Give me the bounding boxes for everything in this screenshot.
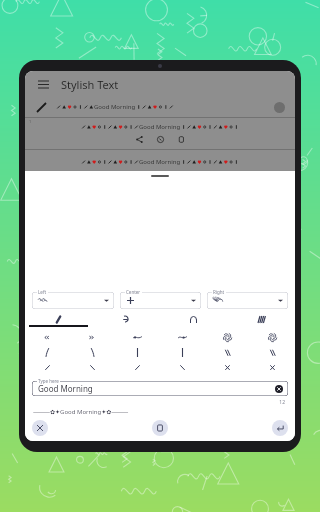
staticText: 12	[25, 399, 285, 406]
button[interactable]	[32, 292, 114, 309]
staticText: Left	[38, 289, 47, 295]
button[interactable]: Symbol 6	[250, 330, 295, 345]
staticText: Right	[213, 289, 225, 295]
button[interactable]: Enter	[272, 420, 288, 436]
button[interactable]: More	[274, 102, 285, 113]
button[interactable]: Symbol 14	[70, 360, 115, 375]
staticText: Good Morning	[139, 123, 181, 131]
button[interactable]: Symbol 5	[205, 330, 250, 345]
button[interactable]: Symbol 11	[205, 345, 250, 360]
button[interactable]: Copy	[152, 420, 168, 436]
button[interactable]: Menu	[35, 76, 51, 92]
button[interactable]: Style tab 1	[25, 313, 92, 325]
button[interactable]: Style tab 3	[159, 313, 227, 325]
button[interactable]: Symbol 17	[205, 360, 250, 375]
staticText: Type here	[38, 378, 59, 384]
button[interactable]: Symbol 8	[70, 345, 115, 360]
staticText: Good Morning	[38, 383, 93, 394]
button[interactable]: Symbol 4	[160, 330, 205, 345]
button[interactable]: Symbol 2	[70, 330, 115, 345]
button[interactable]: Edit	[35, 101, 48, 114]
staticText: Stylish Text	[61, 77, 119, 92]
button[interactable]: Shuffle	[32, 420, 48, 436]
button[interactable]: Good Morning	[25, 118, 295, 149]
button[interactable]: Symbol 1	[25, 330, 70, 345]
button[interactable]: WhatsApp	[155, 134, 165, 144]
button[interactable]: Symbol 7	[25, 345, 70, 360]
button[interactable]: Clear text	[274, 384, 283, 393]
button[interactable]: Symbol 18	[250, 360, 295, 375]
staticText: Good Morning	[139, 158, 181, 166]
button[interactable]: Style tab 4	[227, 313, 295, 325]
button[interactable]: Symbol 3	[115, 330, 160, 345]
button[interactable]: Symbol 16	[160, 360, 205, 375]
button[interactable]: Copy	[176, 134, 186, 144]
button[interactable]	[207, 292, 288, 309]
button[interactable]: Symbol 15	[115, 360, 160, 375]
button[interactable]: Share	[134, 134, 144, 144]
staticText: Center	[126, 289, 141, 295]
staticText: Good Morning	[94, 103, 136, 111]
button[interactable]: Symbol 12	[250, 345, 295, 360]
button[interactable]: Style tab 2	[92, 313, 159, 325]
staticText: ⸻✿✦Good Morning✦✿⸻	[33, 408, 129, 416]
button[interactable]: Symbol 9	[115, 345, 160, 360]
button[interactable]: Symbol 10	[160, 345, 205, 360]
button[interactable]: Symbol 13	[25, 360, 70, 375]
button[interactable]: Good Morning	[25, 150, 295, 166]
button[interactable]	[120, 292, 201, 309]
button[interactable]: Good Morning	[32, 381, 288, 396]
staticText: 1	[29, 119, 32, 124]
